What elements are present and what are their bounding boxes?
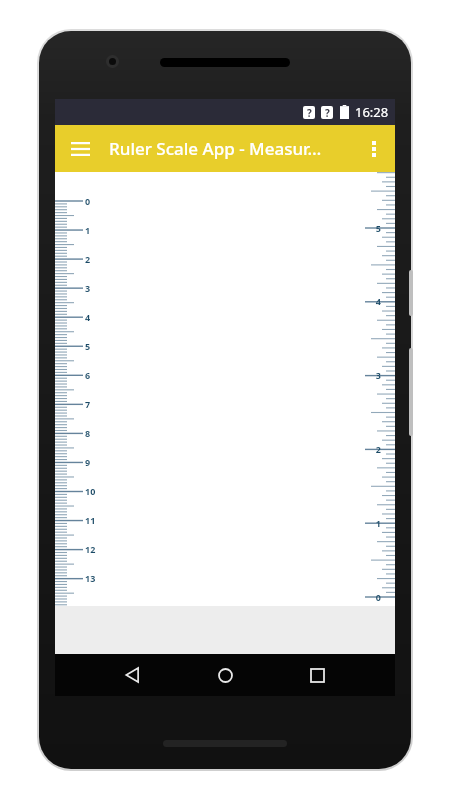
staticText: 11 (85, 514, 96, 526)
staticText: 5 (85, 340, 91, 352)
staticText: ? (325, 106, 330, 119)
staticText: 6 (85, 369, 91, 381)
staticText: 13 (85, 572, 96, 584)
staticText: 3 (85, 282, 91, 294)
button[interactable]: Open navigation drawer (63, 132, 97, 166)
button[interactable]: Recent apps (295, 654, 339, 696)
staticText: 0 (361, 591, 381, 603)
button[interactable]: Home (203, 654, 247, 696)
staticText: 2 (361, 443, 381, 455)
staticText: 5 (361, 222, 381, 234)
staticText: 8 (85, 427, 91, 439)
staticText: 3 (361, 369, 381, 381)
staticText: ? (307, 106, 312, 119)
staticText: 9 (85, 456, 91, 468)
staticText: 7 (85, 398, 91, 410)
button[interactable]: More options (357, 132, 391, 166)
staticText: 4 (361, 295, 381, 307)
staticText: 12 (85, 543, 96, 555)
staticText: 1 (361, 517, 381, 529)
staticText: 0 (85, 195, 91, 207)
staticText: 1 (85, 224, 91, 236)
staticText: 10 (85, 485, 96, 497)
staticText: 2 (85, 253, 91, 265)
button[interactable]: Back (111, 654, 155, 696)
staticText: 4 (85, 311, 91, 323)
staticText: 16:28 (355, 103, 389, 121)
staticText: Ruler Scale App - Measur… (109, 137, 322, 160)
